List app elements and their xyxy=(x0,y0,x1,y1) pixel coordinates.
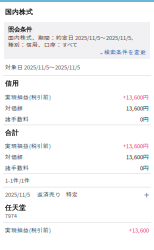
staticText: 照会条件 xyxy=(8,26,32,33)
staticText: ⌄検索条件を変更 xyxy=(99,48,146,56)
button[interactable]: ⌄検索条件を変更 xyxy=(99,48,146,56)
staticText: 7974 xyxy=(5,212,17,219)
staticText: + xyxy=(144,188,149,201)
staticText: 国内株式、期間：約定日 2025/11/5～2025/11/5、 xyxy=(8,33,137,41)
staticText: 諸手数料 xyxy=(5,115,29,123)
staticText: 信用 xyxy=(5,79,19,88)
staticText: 実現損益(税引前) xyxy=(5,226,51,234)
staticText: 13,600円 xyxy=(126,104,149,112)
staticText: 対価額 xyxy=(5,153,23,161)
button[interactable]: 2025/11/5 xyxy=(0,187,154,237)
staticText: 対価額 xyxy=(5,104,23,112)
staticText: 国内株式 xyxy=(5,8,33,16)
staticText: 0円 xyxy=(140,164,149,172)
staticText: 実現損益(税引前) xyxy=(5,142,51,150)
staticText: 任天堂 xyxy=(5,204,26,212)
staticText: 返済売り xyxy=(37,190,61,198)
staticText: +13,600 xyxy=(129,226,149,234)
staticText: 特定 xyxy=(66,190,78,198)
staticText: 1-1件/1件 xyxy=(5,176,30,184)
staticText: 合計 xyxy=(5,128,19,137)
staticText: +13,600円 xyxy=(123,142,149,150)
staticText: 0円 xyxy=(140,115,149,123)
staticText: 実現損益(税引前) xyxy=(5,93,51,101)
staticText: 2025/11/5 xyxy=(5,190,30,198)
staticText: 対象日 2025/11/5～2025/11/5 xyxy=(5,63,80,71)
staticText: +13,600円 xyxy=(123,93,149,101)
staticText: 諸手数料 xyxy=(5,164,29,172)
staticText: 13,600円 xyxy=(126,153,149,161)
staticText: 種別：信用、口座：すべて xyxy=(8,40,78,48)
